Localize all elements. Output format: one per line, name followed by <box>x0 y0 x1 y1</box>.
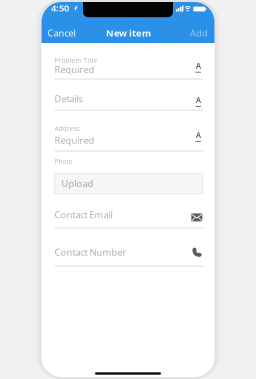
staticText: Details <box>54 92 82 105</box>
staticText: Address <box>54 124 79 133</box>
staticText: A <box>196 61 201 71</box>
staticText: Contact Email <box>54 208 112 221</box>
staticText: 4:50 <box>51 2 69 14</box>
button[interactable]: Cancel <box>47 27 75 39</box>
button[interactable]: Add <box>190 27 208 39</box>
staticText: Add <box>190 27 208 39</box>
staticText: Contact Number <box>54 246 126 258</box>
staticText: Problem Title <box>54 56 97 65</box>
staticText: Required <box>54 134 94 146</box>
button[interactable]: Details <box>54 86 203 112</box>
staticText: New item <box>106 27 151 39</box>
button[interactable]: Address <box>54 124 203 152</box>
staticText: Upload <box>61 177 93 190</box>
button[interactable]: Contact Number <box>54 245 203 267</box>
staticText: Photo <box>54 157 72 166</box>
button[interactable]: Problem Title <box>54 54 203 80</box>
staticText: Required <box>54 63 94 76</box>
staticText: A <box>196 130 201 140</box>
staticText: Cancel <box>47 27 75 39</box>
button[interactable]: Upload <box>54 173 203 194</box>
staticText: A <box>196 95 201 105</box>
button[interactable]: Contact Email <box>54 208 203 229</box>
